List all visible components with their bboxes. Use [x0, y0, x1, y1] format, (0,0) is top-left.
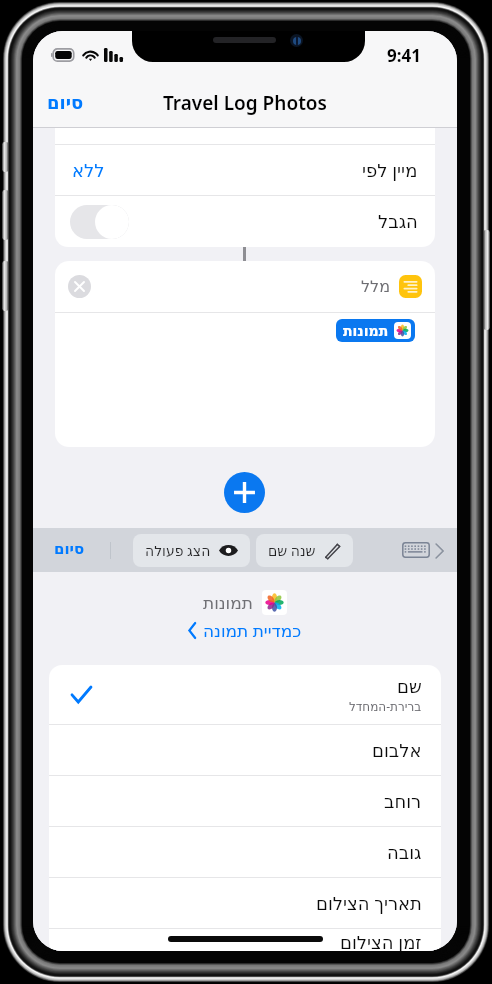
button[interactable]: סיום — [33, 88, 96, 117]
staticText: אלבום — [372, 740, 422, 761]
button[interactable]: Limit toggle — [70, 205, 129, 239]
button[interactable]: Hide keyboard — [396, 536, 436, 564]
button[interactable]: Text action — [399, 275, 422, 298]
button[interactable]: הצג פעולה — [133, 534, 250, 567]
staticText: תמונות — [203, 593, 253, 613]
staticText: תאריך הצילום — [316, 891, 422, 916]
button[interactable]: סיום — [45, 533, 94, 564]
staticText: סיום — [54, 540, 85, 557]
staticText: מלל — [361, 277, 391, 296]
button[interactable]: Limit toggle — [55, 196, 435, 247]
staticText: ללא — [72, 160, 105, 181]
button[interactable]: Add action — [224, 472, 265, 513]
button[interactable]: תמונות — [336, 319, 415, 342]
staticText: שנה שם — [268, 541, 316, 560]
staticText: Travel Log Photos — [163, 90, 327, 116]
staticText: מיין לפי — [362, 158, 418, 183]
staticText: 9:41 — [387, 44, 421, 67]
button[interactable]: תאריך הצילום — [49, 878, 441, 928]
staticText: רוחב — [384, 791, 422, 812]
staticText: ברירת-המחדל — [349, 698, 422, 714]
button[interactable]: שנה שם — [256, 534, 353, 567]
staticText: הגבל — [378, 211, 418, 232]
staticText: גובה — [387, 842, 422, 863]
staticText: זמן הצילום — [340, 930, 422, 951]
staticText: כמדיית תמונה — [203, 619, 302, 641]
button[interactable]: שם — [49, 665, 441, 724]
staticText: סיום — [47, 92, 84, 113]
staticText: שם — [397, 676, 422, 697]
button[interactable]: זמן הצילום — [49, 929, 441, 951]
button[interactable]: כמדיית תמונה — [33, 619, 457, 641]
button[interactable]: גובה — [49, 827, 441, 877]
button[interactable]: ללא — [55, 145, 435, 195]
staticText: הצג פעולה — [145, 541, 211, 560]
button[interactable]: אלבום — [49, 725, 441, 775]
staticText: תמונות — [343, 323, 389, 339]
button[interactable]: רוחב — [49, 776, 441, 826]
button[interactable]: Remove — [55, 261, 435, 312]
button[interactable]: Remove — [68, 275, 91, 298]
